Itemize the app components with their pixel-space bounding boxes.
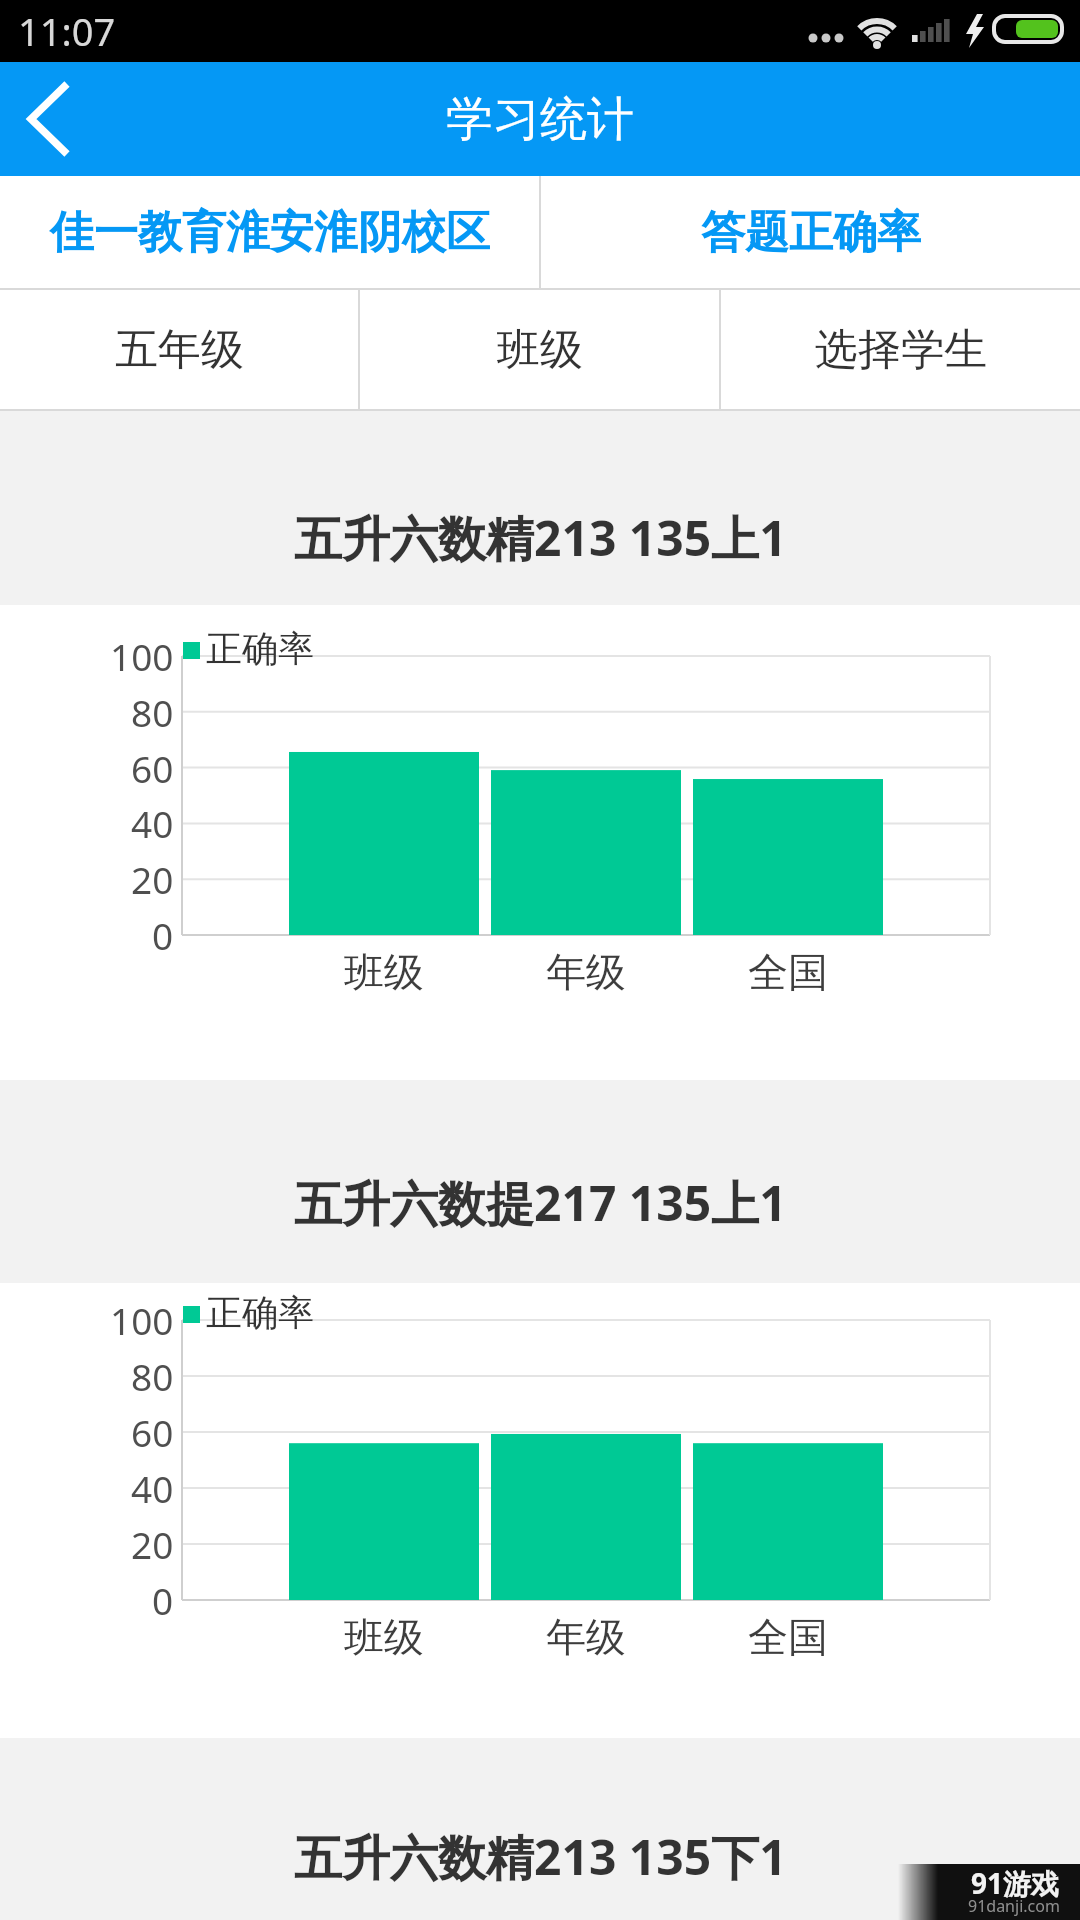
staticText: 20 — [131, 1519, 174, 1569]
staticText: 正确率 — [206, 626, 314, 671]
staticText: 佳一教育淮安淮阴校区 — [50, 205, 490, 260]
staticText: 0 — [152, 1575, 174, 1625]
staticText: 全国 — [748, 1612, 828, 1662]
staticText: 五年级 — [115, 323, 244, 377]
button[interactable]: 答题正确率 — [541, 176, 1080, 288]
staticText: 100 — [110, 1295, 174, 1345]
staticText: 学习统计 — [446, 90, 634, 149]
staticText: 正确率 — [206, 1290, 314, 1335]
staticText: 91danji.com — [968, 1895, 1060, 1917]
staticText: 五升六数精213 135下1 — [294, 1824, 787, 1890]
button[interactable] — [14, 83, 86, 155]
staticText: 五升六数精213 135上1 — [294, 505, 787, 571]
staticText: 60 — [131, 1407, 174, 1457]
staticText: 班级 — [344, 1612, 424, 1662]
staticText: 20 — [131, 854, 174, 904]
staticText: 80 — [131, 1351, 174, 1401]
staticText: 11:07 — [18, 5, 116, 57]
button[interactable]: 五年级 — [0, 290, 358, 409]
staticText: 0 — [152, 910, 174, 960]
staticText: 80 — [131, 687, 174, 737]
button[interactable]: 班级 — [360, 290, 719, 409]
staticText: 班级 — [344, 947, 424, 997]
staticText: 全国 — [748, 947, 828, 997]
staticText: 年级 — [546, 1612, 626, 1662]
staticText: 五升六数提217 135上1 — [294, 1170, 787, 1236]
staticText: 60 — [131, 743, 174, 793]
staticText: 40 — [131, 798, 174, 848]
staticText: 91游戏 — [971, 1864, 1060, 1902]
button[interactable]: 选择学生 — [721, 290, 1080, 409]
staticText: 40 — [131, 1463, 174, 1513]
staticText: 答题正确率 — [701, 205, 921, 260]
staticText: 年级 — [546, 947, 626, 997]
button[interactable]: 佳一教育淮安淮阴校区 — [0, 176, 539, 288]
staticText: 班级 — [497, 323, 583, 377]
staticText: 100 — [110, 631, 174, 681]
staticText: 选择学生 — [815, 323, 987, 377]
